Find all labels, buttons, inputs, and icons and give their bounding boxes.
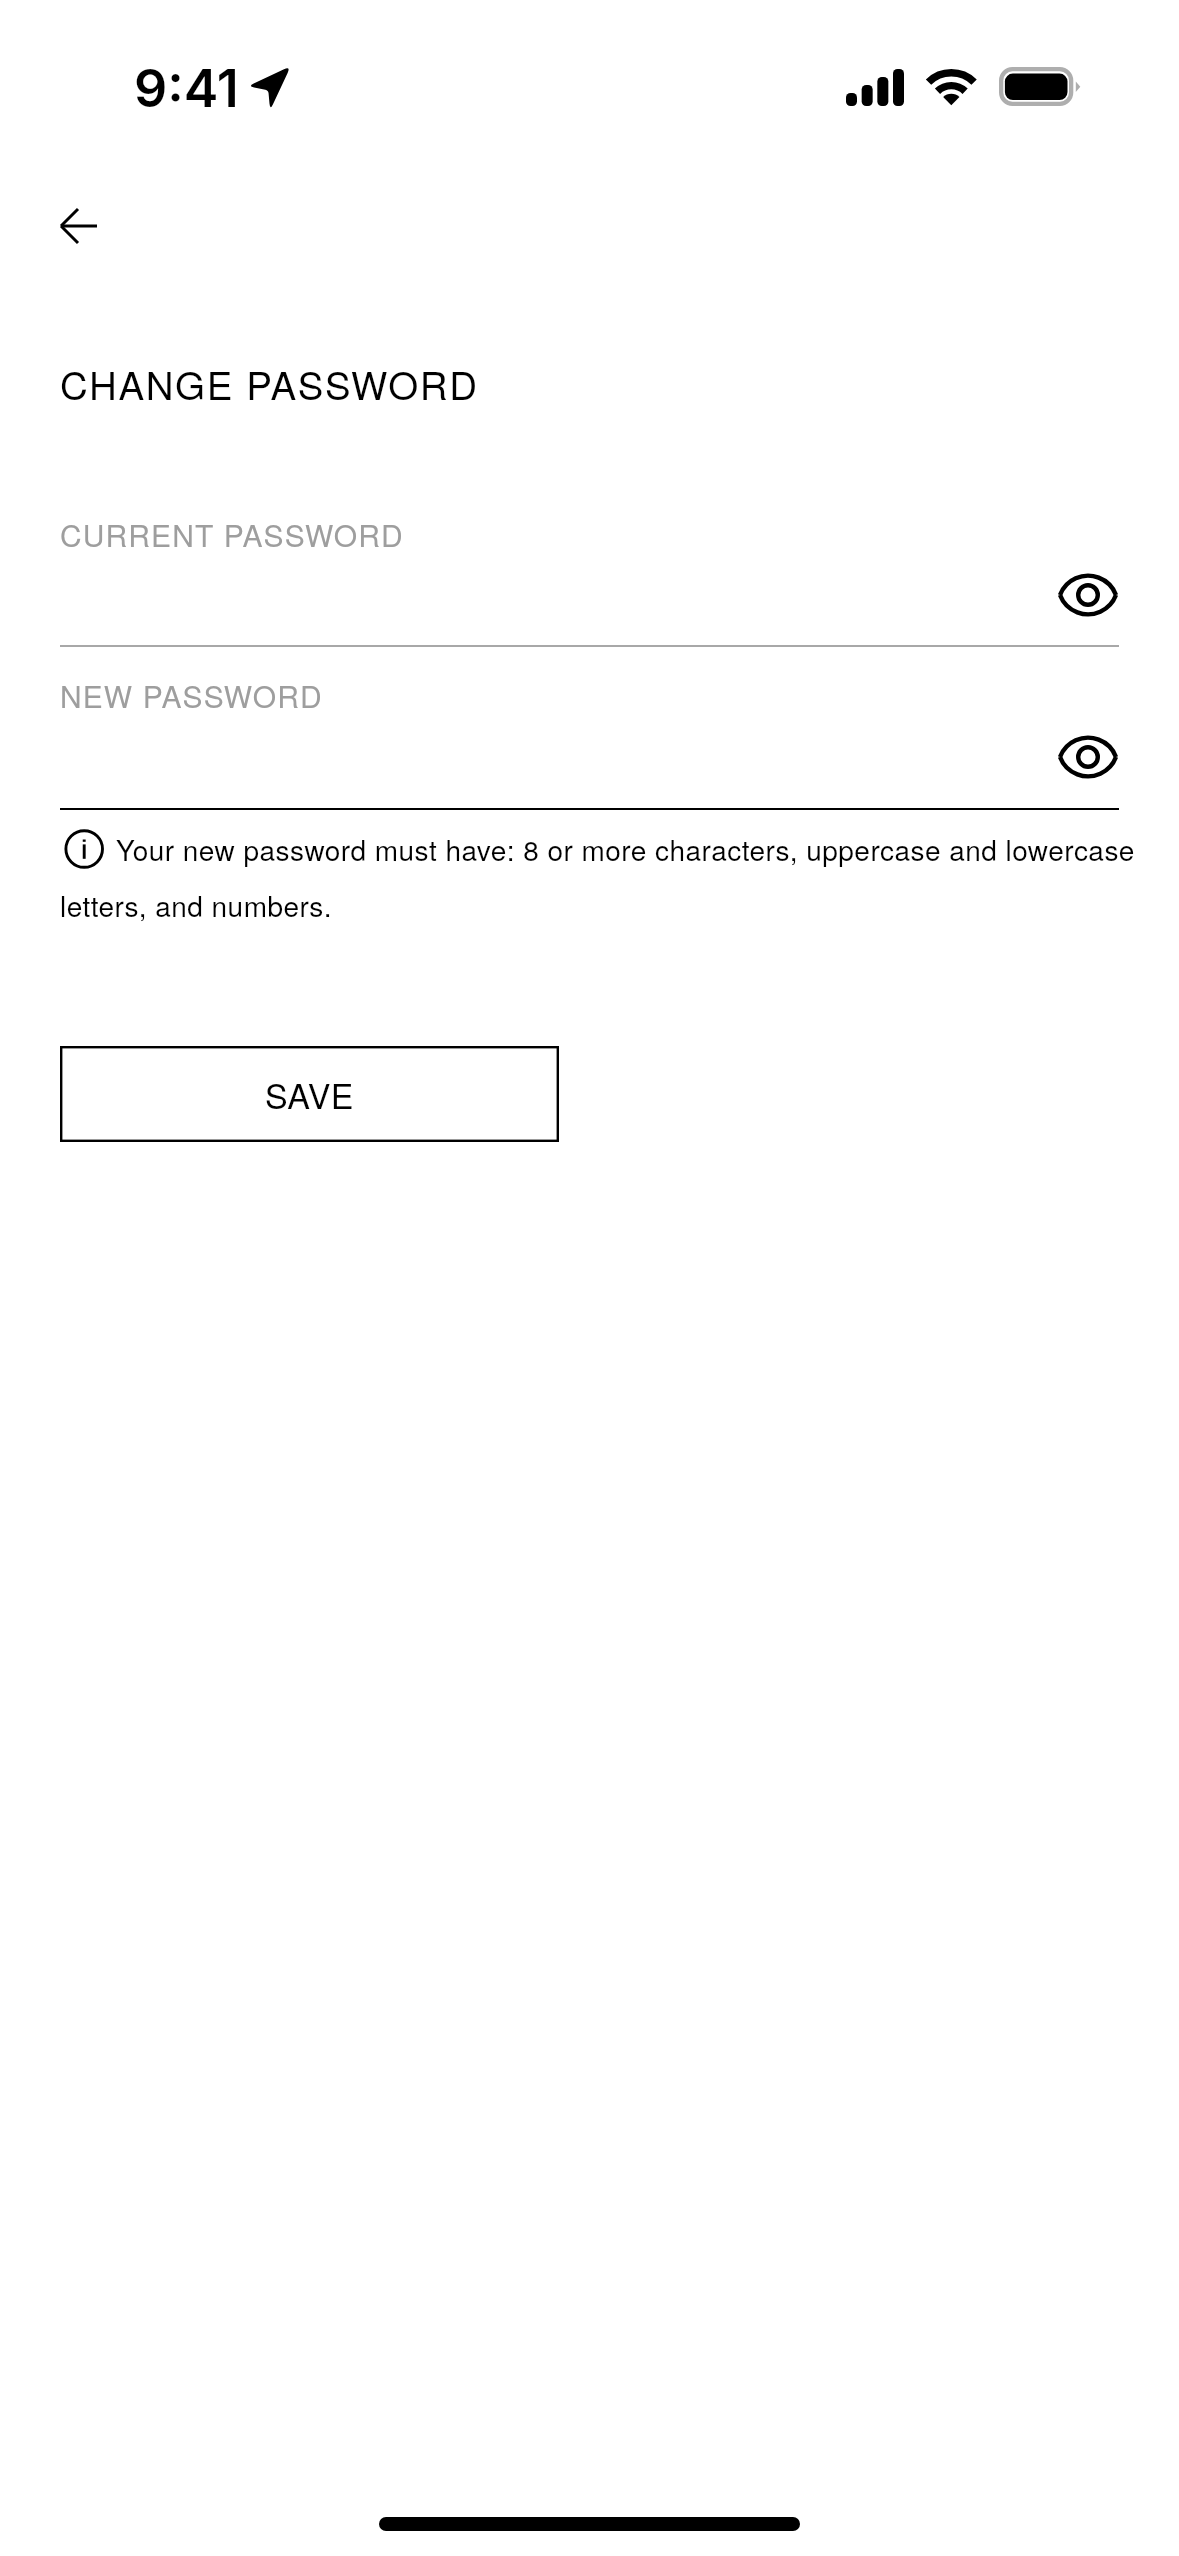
button[interactable]: Show current password	[1056, 571, 1120, 619]
button[interactable]: CURRENT PASSWORD	[60, 501, 1119, 647]
staticText: SAVE	[265, 1070, 354, 1119]
staticText: NEW PASSWORD	[60, 674, 323, 717]
button[interactable]: SAVE	[60, 1046, 559, 1142]
button[interactable]: NEW PASSWORD	[60, 662, 1119, 810]
button[interactable]: Back	[37, 202, 121, 250]
staticText: 9:41	[134, 57, 239, 120]
staticText: CURRENT PASSWORD	[60, 513, 404, 556]
button[interactable]: Show new password	[1056, 733, 1120, 781]
staticText: CHANGE PASSWORD	[60, 356, 479, 411]
staticText: iYour new password must have: 8 or more …	[60, 816, 1145, 928]
